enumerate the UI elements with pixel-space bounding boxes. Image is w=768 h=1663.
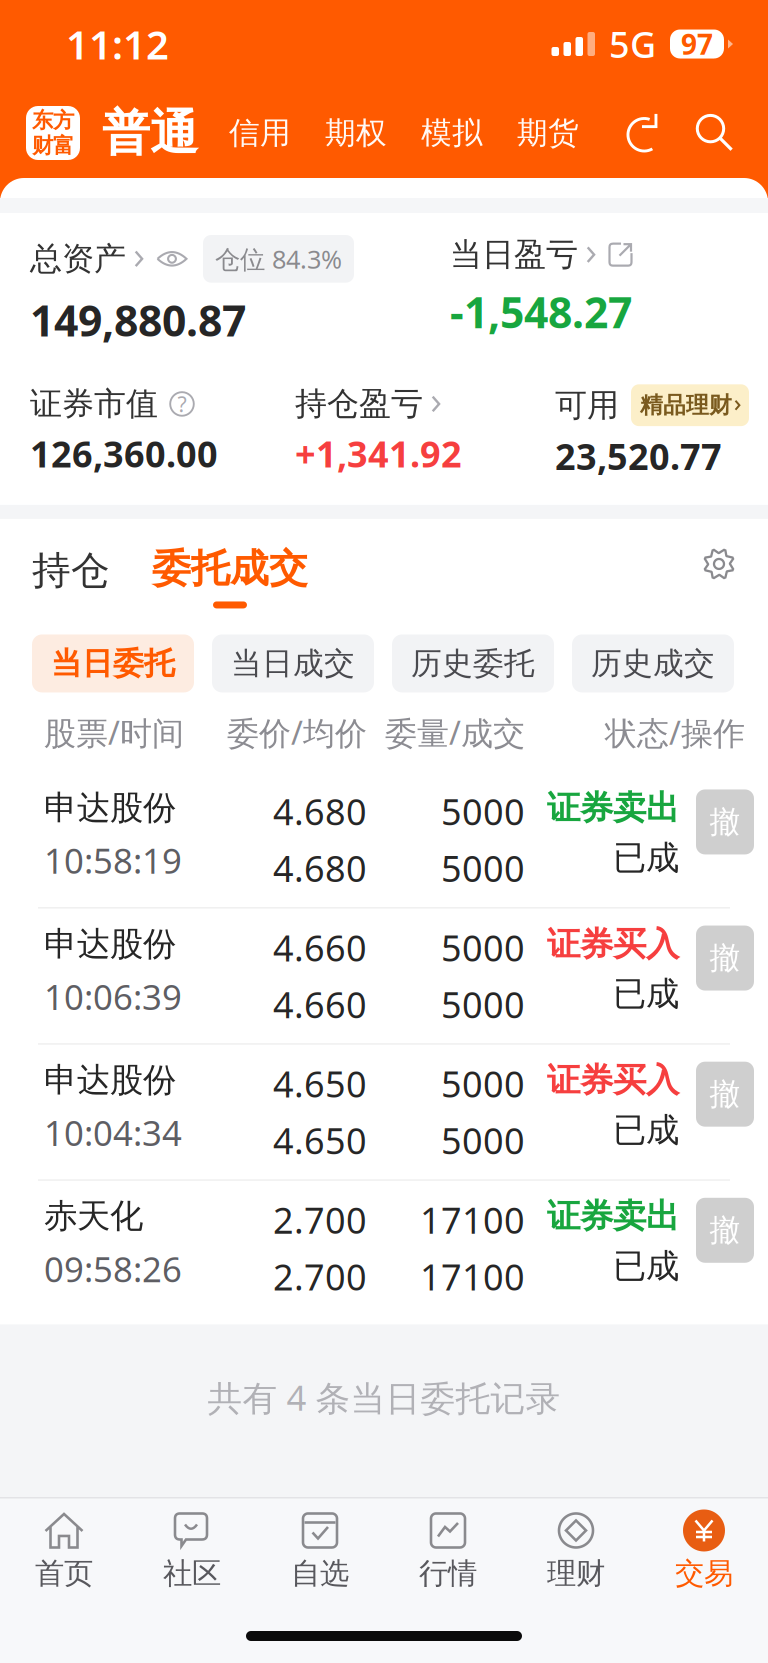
- button[interactable]: 刷新: [624, 111, 668, 155]
- staticText: 已成: [613, 973, 679, 1014]
- staticText: 2.700: [273, 1253, 367, 1300]
- button[interactable]: 委托成交: [110, 519, 308, 608]
- button[interactable]: 撤: [696, 1198, 754, 1263]
- staticText: 委量/成交: [385, 711, 525, 754]
- button[interactable]: 东方财富: [26, 106, 80, 160]
- button[interactable]: 持仓盈亏: [295, 384, 555, 477]
- button[interactable]: 申达股份: [0, 1045, 768, 1179]
- staticText: 证券卖出: [547, 787, 679, 828]
- staticText: 4.660: [273, 924, 367, 971]
- staticText: 模拟: [421, 114, 483, 152]
- button[interactable]: 总资产: [30, 239, 188, 278]
- staticText: 4.660: [273, 980, 367, 1028]
- staticText: 5000: [441, 1116, 525, 1164]
- staticText: 持仓: [32, 547, 110, 594]
- button[interactable]: 撤: [696, 1062, 754, 1127]
- staticText: 4.650: [273, 1116, 367, 1164]
- button[interactable]: 交易: [640, 1506, 768, 1596]
- staticText: 09:58:26: [44, 1246, 182, 1292]
- staticText: 社区: [163, 1555, 221, 1591]
- staticText: 撤: [709, 1211, 740, 1249]
- staticText: 10:04:34: [44, 1110, 182, 1156]
- staticText: 可用: [555, 386, 619, 425]
- button[interactable]: 普通: [80, 95, 198, 170]
- staticText: 23,520.77: [555, 432, 722, 480]
- staticText: 17100: [420, 1196, 525, 1244]
- staticText: 仓位 84.3%: [215, 242, 342, 276]
- staticText: 申达股份: [44, 787, 176, 828]
- staticText: 申达股份: [44, 1060, 176, 1101]
- staticText: 期货: [517, 114, 579, 152]
- staticText: 共有 4 条当日委托记录: [207, 1374, 560, 1420]
- staticText: 自选: [291, 1555, 349, 1591]
- button[interactable]: 期权: [308, 102, 404, 164]
- staticText: 已成: [613, 1246, 679, 1287]
- staticText: 5G: [609, 20, 656, 68]
- button[interactable]: 首页: [0, 1506, 128, 1596]
- staticText: 证券买入: [547, 1060, 679, 1101]
- button[interactable]: 设置: [700, 519, 738, 583]
- staticText: 证券卖出: [547, 1196, 679, 1237]
- button[interactable]: 仓位 84.3%: [203, 235, 354, 283]
- button[interactable]: 期货: [500, 102, 596, 164]
- staticText: 当日成交: [231, 645, 355, 682]
- staticText: 17100: [420, 1253, 525, 1300]
- staticText: 期权: [325, 114, 387, 152]
- button[interactable]: 申达股份: [0, 772, 768, 907]
- staticText: 总资产: [30, 239, 126, 278]
- button[interactable]: 精品理财: [631, 384, 749, 426]
- staticText: 当日盈亏: [450, 235, 578, 274]
- staticText: 5000: [441, 787, 525, 835]
- staticText: 4.680: [273, 787, 367, 835]
- button[interactable]: 申达股份: [0, 909, 768, 1043]
- staticText: 已成: [613, 837, 679, 878]
- button[interactable]: 撤: [696, 789, 754, 854]
- staticText: 97: [681, 25, 713, 63]
- staticText: 5000: [441, 924, 525, 971]
- staticText: 首页: [35, 1555, 93, 1591]
- button[interactable]: 行情: [384, 1506, 512, 1596]
- button[interactable]: 当日盈亏: [450, 235, 635, 274]
- staticText: +1,341.92: [295, 430, 462, 477]
- button[interactable]: 理财: [512, 1506, 640, 1596]
- staticText: -1,548.27: [450, 283, 632, 340]
- staticText: 证券市值: [30, 384, 158, 424]
- staticText: 撤: [709, 939, 740, 977]
- button[interactable]: 赤天化: [0, 1181, 768, 1315]
- staticText: 股票/时间: [44, 711, 184, 754]
- staticText: 10:58:19: [44, 837, 182, 883]
- staticText: 东方: [32, 107, 74, 133]
- staticText: 委托成交: [152, 545, 308, 592]
- staticText: 已成: [613, 1110, 679, 1150]
- button[interactable]: 当日委托: [32, 634, 194, 692]
- staticText: ?: [177, 390, 186, 418]
- staticText: 2.700: [273, 1196, 367, 1244]
- staticText: 赤天化: [44, 1196, 143, 1237]
- staticText: 证券买入: [547, 924, 679, 964]
- button[interactable]: 当日成交: [212, 634, 374, 692]
- staticText: 撤: [709, 803, 740, 841]
- button[interactable]: 历史成交: [572, 634, 734, 692]
- staticText: 11:12: [66, 17, 169, 70]
- button[interactable]: 撤: [696, 926, 754, 991]
- staticText: 历史成交: [591, 645, 715, 682]
- button[interactable]: 搜索: [668, 111, 736, 155]
- staticText: 持仓盈亏: [295, 384, 423, 424]
- staticText: 历史委托: [411, 645, 535, 682]
- staticText: 行情: [419, 1555, 477, 1591]
- button[interactable]: 模拟: [404, 102, 500, 164]
- staticText: 5000: [441, 980, 525, 1028]
- staticText: 4.650: [273, 1060, 367, 1107]
- staticText: 149,880.87: [30, 292, 246, 348]
- staticText: 信用: [229, 114, 291, 152]
- staticText: 精品理财: [640, 391, 732, 419]
- button[interactable]: 持仓: [32, 519, 110, 594]
- button[interactable]: 历史委托: [392, 634, 554, 692]
- staticText: 10:06:39: [44, 973, 182, 1019]
- staticText: 5000: [441, 844, 525, 892]
- staticText: 当日委托: [51, 645, 175, 682]
- button[interactable]: 社区: [128, 1506, 256, 1596]
- button[interactable]: 信用: [212, 102, 308, 164]
- button[interactable]: 自选: [256, 1506, 384, 1596]
- staticText: 状态/操作: [605, 711, 745, 754]
